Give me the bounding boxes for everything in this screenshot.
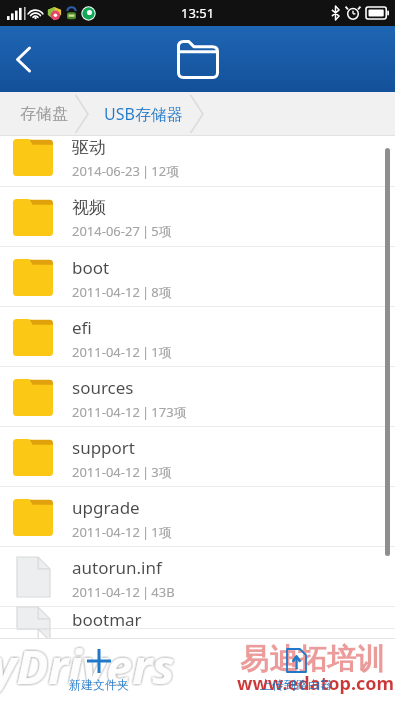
staticText: efi (72, 316, 92, 339)
staticText: yDrivers (0, 633, 177, 697)
button[interactable]: efi (0, 307, 395, 367)
staticText: 13:51 (181, 4, 215, 22)
staticText: 视频 (72, 197, 106, 218)
button[interactable]: Back (0, 36, 46, 82)
staticText: yDrivers (0, 636, 173, 700)
staticText: yDrivers (0, 633, 173, 697)
staticText: boot (72, 256, 110, 279)
staticText: yDrivers (0, 636, 174, 700)
staticText: yDrivers (0, 634, 176, 698)
button[interactable]: Current folder (173, 34, 223, 84)
staticText: yDrivers (0, 634, 177, 698)
staticText: 存储盘 (20, 104, 68, 124)
staticText: yDrivers (0, 634, 173, 698)
button[interactable]: 视频 (0, 187, 395, 247)
staticText: yDrivers (0, 636, 176, 700)
staticText: yDrivers (0, 635, 175, 699)
staticText: 2011-04-12 | 3项 (72, 463, 172, 481)
staticText: support (72, 436, 136, 459)
staticText: upgrade (72, 496, 140, 519)
button[interactable]: 驱动 (0, 127, 395, 187)
staticText: 2011-04-12 | 43B (72, 583, 175, 601)
button[interactable]: upgrade (0, 487, 395, 547)
staticText: yDrivers (0, 635, 177, 699)
staticText: 新建文件夹 (69, 677, 129, 692)
staticText: 上传到路由器 (260, 677, 332, 692)
button[interactable]: USB存储器 (90, 92, 189, 136)
staticText: USB存储器 (104, 103, 183, 125)
button[interactable]: 新建文件夹 (0, 638, 197, 702)
button[interactable]: 存储盘 (0, 92, 74, 136)
staticText: yDrivers (0, 635, 174, 699)
staticText: bootmar (72, 608, 142, 630)
button[interactable]: autorun.inf (0, 547, 395, 607)
staticText: yDrivers (0, 636, 175, 700)
staticText: yDrivers (0, 632, 175, 696)
button[interactable]: sources (0, 367, 395, 427)
staticText: yDrivers (0, 632, 174, 696)
button[interactable]: support (0, 427, 395, 487)
staticText: yDrivers (0, 635, 173, 699)
staticText: yDrivers (0, 634, 174, 698)
button[interactable]: boot (0, 247, 395, 307)
button[interactable]: 上传到路由器 (197, 638, 395, 702)
staticText: 2011-04-12 | 173项 (72, 403, 187, 421)
staticText: yDrivers (0, 632, 176, 696)
staticText: 2011-04-12 | 1项 (72, 523, 172, 541)
button[interactable]: bootmar (0, 607, 395, 629)
staticText: autorun.inf (72, 556, 162, 579)
staticText: yDrivers (0, 632, 173, 696)
staticText: yDrivers (0, 633, 174, 697)
staticText: 驱动 (72, 137, 106, 158)
staticText: yDrivers (0, 636, 177, 700)
staticText: 2011-04-12 | 8项 (72, 283, 172, 301)
staticText: yDrivers (0, 635, 176, 699)
staticText: yDrivers (0, 633, 176, 697)
staticText: 2014-06-23 | 12项 (72, 162, 180, 180)
staticText: yDrivers (0, 633, 175, 697)
staticText: 2014-06-27 | 5项 (72, 222, 172, 240)
staticText: www.edatop.com (237, 671, 395, 696)
staticText: yDrivers (0, 634, 175, 698)
staticText: yDrivers (0, 632, 177, 696)
staticText: sources (72, 376, 134, 399)
staticText: yDrivers (0, 634, 175, 698)
staticText: 2011-04-12 | 1项 (72, 343, 172, 361)
staticText: 易迪拓培训 (240, 641, 385, 678)
